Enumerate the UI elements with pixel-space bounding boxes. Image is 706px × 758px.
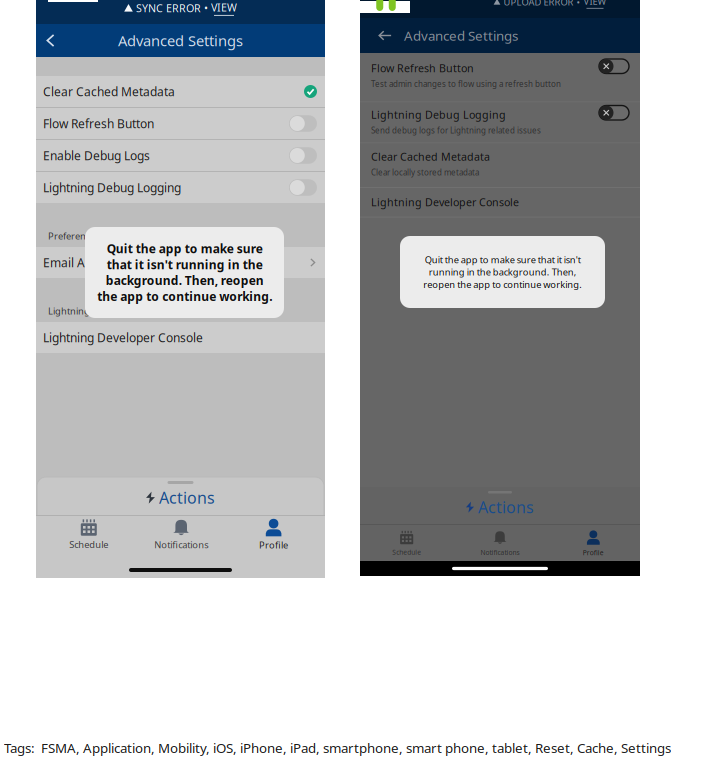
staticText: Lightning Debug Logging xyxy=(371,107,506,122)
staticText: Actions xyxy=(478,496,534,518)
staticText: Notifications xyxy=(154,539,208,551)
button[interactable]: Clear Cached Metadata xyxy=(36,76,325,107)
button[interactable]: Flow Refresh Button xyxy=(36,108,325,139)
button[interactable]: Notifications xyxy=(135,517,227,553)
button[interactable]: Back xyxy=(36,24,66,57)
staticText: Quit the app to make sure that it isn't … xyxy=(423,253,582,291)
staticText: Flow Refresh Button xyxy=(371,61,474,75)
button[interactable]: Schedule xyxy=(360,526,453,560)
button[interactable]: Enable Debug Logs xyxy=(36,140,325,171)
staticText: VIEW xyxy=(583,0,606,7)
staticText: Preferences xyxy=(48,230,99,242)
button[interactable]: Lightning Debug Logging xyxy=(360,102,640,142)
staticText: Email Address xyxy=(43,254,123,270)
staticText: Actions xyxy=(159,487,215,508)
staticText: Enable Debug Logs xyxy=(43,147,150,163)
staticText: • xyxy=(204,1,208,15)
staticText: Schedule xyxy=(392,548,421,557)
staticText: Clear Cached Metadata xyxy=(43,83,175,99)
button[interactable]: Schedule xyxy=(43,517,135,553)
staticText: Clear locally stored metadata xyxy=(371,167,479,178)
staticText: Schedule xyxy=(69,538,108,551)
staticText: Clear Cached Metadata xyxy=(371,149,490,164)
button[interactable]: Back xyxy=(377,27,393,43)
staticText: Quit the app to make sure that it isn't … xyxy=(97,241,272,304)
button[interactable]: Flow Refresh Button xyxy=(360,53,640,101)
button[interactable]: Lightning Developer Console xyxy=(360,188,640,217)
staticText: VIEW xyxy=(211,0,237,14)
button[interactable]: Lightning Developer Console xyxy=(36,322,325,353)
staticText: Lightning Developer Console xyxy=(371,195,519,209)
button[interactable]: Clear Cached Metadata xyxy=(360,143,640,187)
staticText: Lightning xyxy=(48,305,90,317)
staticText: SYNC ERROR xyxy=(136,1,201,15)
staticText: Flow Refresh Button xyxy=(43,115,154,131)
staticText: Profile xyxy=(259,539,288,551)
staticText: Advanced Settings xyxy=(404,27,518,44)
button[interactable]: Email Address xyxy=(36,247,325,278)
button[interactable]: Lightning Debug Logging xyxy=(36,172,325,203)
button[interactable]: Profile xyxy=(547,526,640,560)
staticText: Notifications xyxy=(480,548,519,557)
staticText: UPLOAD ERROR xyxy=(503,0,573,8)
staticText: Lightning Debug Logging xyxy=(43,179,181,195)
button[interactable]: Notifications xyxy=(453,526,547,560)
staticText: Advanced Settings xyxy=(118,31,243,50)
staticText: Test admin changes to flow using a refre… xyxy=(371,79,561,89)
staticText: Tags: FSMA, Application, Mobility, iOS, … xyxy=(4,739,671,757)
button[interactable]: Profile xyxy=(227,517,320,553)
staticText: Send debug logs for Lightning related is… xyxy=(371,125,541,136)
staticText: Profile xyxy=(583,548,604,557)
staticText: Lightning Developer Console xyxy=(43,329,203,345)
staticText: • xyxy=(576,0,580,8)
